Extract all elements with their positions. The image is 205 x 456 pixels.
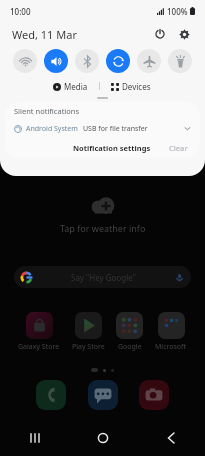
button[interactable]: Messages bbox=[88, 380, 118, 410]
button[interactable]: Notification settings bbox=[69, 141, 155, 155]
button[interactable]: Clear bbox=[165, 141, 192, 155]
button[interactable]: Play Store bbox=[70, 310, 107, 354]
staticText: Galaxy Store bbox=[18, 342, 60, 352]
staticText: Devices bbox=[122, 81, 151, 92]
staticText: Silent notifications bbox=[14, 106, 80, 116]
button[interactable]: Home bbox=[69, 424, 137, 452]
button[interactable]: Back bbox=[137, 424, 205, 452]
staticText: Clear bbox=[169, 143, 188, 153]
button[interactable]: Microsoft bbox=[153, 310, 189, 354]
button[interactable]: Flashlight bbox=[168, 49, 192, 73]
staticText: Microsoft bbox=[155, 342, 187, 352]
staticText: Notification settings bbox=[73, 143, 151, 153]
button[interactable]: Auto rotate bbox=[106, 49, 130, 73]
button[interactable]: Media bbox=[49, 80, 92, 93]
button[interactable]: Say "Hey Google" bbox=[14, 266, 191, 288]
staticText: 10:00 bbox=[10, 6, 31, 17]
staticText: Say "Hey Google" bbox=[71, 272, 136, 283]
staticText: 100% bbox=[167, 6, 188, 17]
button[interactable]: Settings bbox=[175, 25, 193, 43]
staticText: Tap for weather info bbox=[60, 222, 146, 234]
button[interactable]: Devices bbox=[107, 80, 155, 93]
button[interactable]: Sound bbox=[44, 49, 68, 73]
staticText: Android System bbox=[26, 124, 78, 134]
button[interactable]: Phone bbox=[36, 380, 66, 410]
staticText: USB for file transfer bbox=[83, 124, 148, 134]
button[interactable]: Camera bbox=[139, 380, 169, 410]
button[interactable]: Power bbox=[151, 25, 169, 43]
button[interactable]: Recents bbox=[0, 424, 69, 452]
button[interactable]: Google bbox=[114, 310, 145, 354]
staticText: Play Store bbox=[72, 342, 105, 352]
button[interactable]: Bluetooth bbox=[75, 49, 99, 73]
staticText: Wed, 11 Mar bbox=[12, 27, 77, 42]
staticText: Google bbox=[118, 342, 142, 352]
button[interactable]: Wi-Fi bbox=[13, 49, 37, 73]
button[interactable]: Flight mode bbox=[137, 49, 161, 73]
button[interactable]: Galaxy Store bbox=[16, 310, 62, 354]
button[interactable]: Android System bbox=[5, 119, 200, 138]
staticText: Media bbox=[64, 81, 88, 92]
